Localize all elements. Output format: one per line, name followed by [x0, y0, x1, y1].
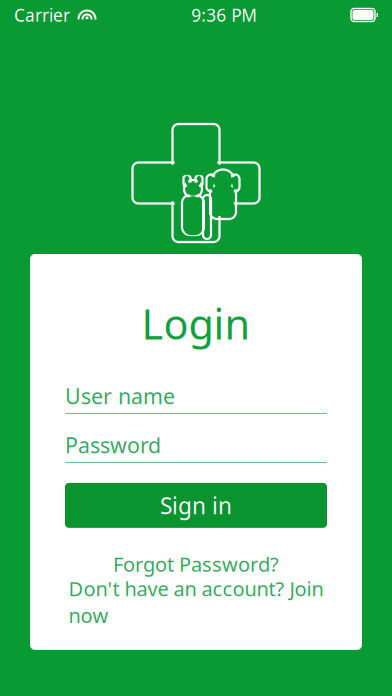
button[interactable]: Don't have an account? Join now	[65, 590, 327, 614]
staticText: User name	[65, 382, 175, 410]
staticText: Carrier	[14, 3, 70, 26]
staticText: Don't have an account? Join now	[68, 575, 323, 628]
staticText: Sign in	[160, 490, 232, 520]
staticText: Forgot Password?	[113, 551, 279, 577]
staticText: Password	[65, 431, 161, 459]
button[interactable]: Sign in	[65, 483, 327, 528]
staticText: 9:36 PM	[191, 3, 257, 26]
staticText: Login	[141, 296, 250, 351]
button[interactable]: Forgot Password?	[65, 552, 327, 576]
